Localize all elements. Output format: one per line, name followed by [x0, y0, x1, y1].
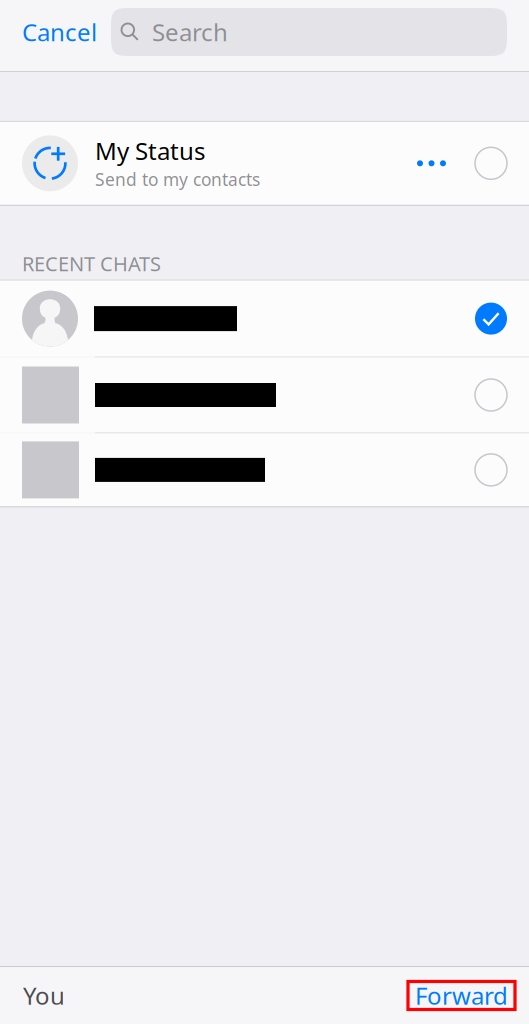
button[interactable]: Forward: [408, 981, 515, 1009]
button[interactable]: More options: [417, 147, 446, 179]
staticText: Search: [152, 16, 228, 48]
button[interactable]: [0, 433, 529, 506]
button[interactable]: Cancel: [0, 8, 111, 56]
staticText: My Status: [95, 135, 205, 167]
staticText: You: [23, 980, 65, 1011]
button[interactable]: [0, 281, 529, 357]
staticText: Forward: [415, 980, 508, 1011]
staticText: RECENT CHATS: [22, 250, 161, 277]
staticText: Cancel: [22, 16, 97, 48]
button[interactable]: My Status: [0, 122, 529, 205]
button[interactable]: [0, 357, 529, 432]
staticText: Send to my contacts: [95, 168, 260, 191]
